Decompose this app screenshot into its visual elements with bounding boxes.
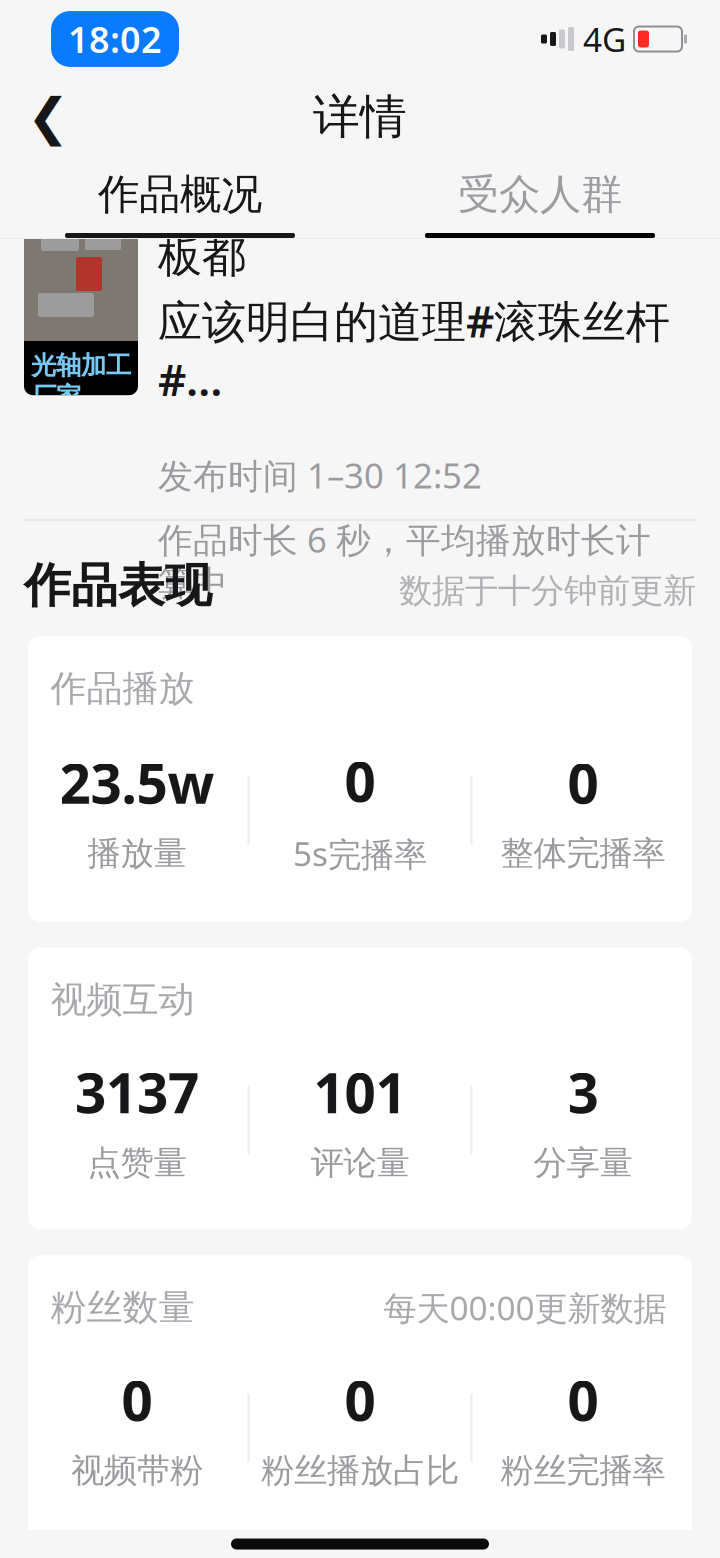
staticText: 0 xyxy=(567,1364,598,1436)
staticText: 18:02 xyxy=(68,15,162,63)
staticText: 有舍才有得 xyxy=(33,188,128,211)
staticText: 有舍才有得，每个创业老板都 xyxy=(158,175,642,283)
staticText: 0 xyxy=(344,1535,375,1558)
staticText: 光轴加工厂家 xyxy=(31,350,131,412)
staticText: 粉丝播放占比 xyxy=(261,1450,459,1491)
staticText: 0 xyxy=(344,1364,375,1436)
staticText: 粉丝完播率 xyxy=(500,1450,665,1491)
staticText: 0 xyxy=(344,744,375,817)
staticText: 视频互动 xyxy=(50,978,194,1022)
staticText: 作品概况 xyxy=(98,169,262,220)
staticText: 发布时间 1–30 12:52 xyxy=(158,452,482,498)
staticText: 作品时长 6 秒，平均播放时长计算中 xyxy=(158,516,651,605)
staticText: 数据于十分钟前更新 xyxy=(399,570,696,611)
button[interactable]: 作品概况 xyxy=(0,156,360,238)
staticText: 分享量 xyxy=(533,1142,632,1183)
staticText: 4G xyxy=(583,17,626,61)
staticText: 作品播放 xyxy=(50,666,194,710)
staticText: 0 xyxy=(121,1364,152,1436)
staticText: 每天00:00更新数据 xyxy=(383,1285,666,1330)
button[interactable]: 返回 xyxy=(12,81,84,153)
staticText: 评论量 xyxy=(310,1142,409,1183)
staticText: ❮ xyxy=(27,88,69,146)
staticText: 受众人群 xyxy=(458,169,622,220)
staticText: 播放量 xyxy=(87,833,186,874)
staticText: 视频带粉 xyxy=(71,1450,203,1491)
staticText: 详情 xyxy=(313,88,407,146)
staticText: 0 xyxy=(567,746,598,819)
staticText: 3137 xyxy=(75,1056,199,1128)
staticText: 整体完播率 xyxy=(500,833,665,874)
staticText: 点赞量 xyxy=(87,1142,186,1183)
staticText: 3 xyxy=(567,1056,598,1128)
staticText: 应该明白的道理#滚珠丝杆 #… xyxy=(158,291,670,408)
staticText: 作品表现 xyxy=(24,557,212,614)
staticText: 小小举动 xyxy=(43,163,119,186)
staticText: 5s完播率 xyxy=(293,831,427,875)
button[interactable]: 受众人群 xyxy=(360,156,720,238)
staticText: 101 xyxy=(313,1056,406,1128)
staticText: 23.5w xyxy=(59,746,214,819)
staticText: 粉丝数量 xyxy=(50,1285,194,1329)
